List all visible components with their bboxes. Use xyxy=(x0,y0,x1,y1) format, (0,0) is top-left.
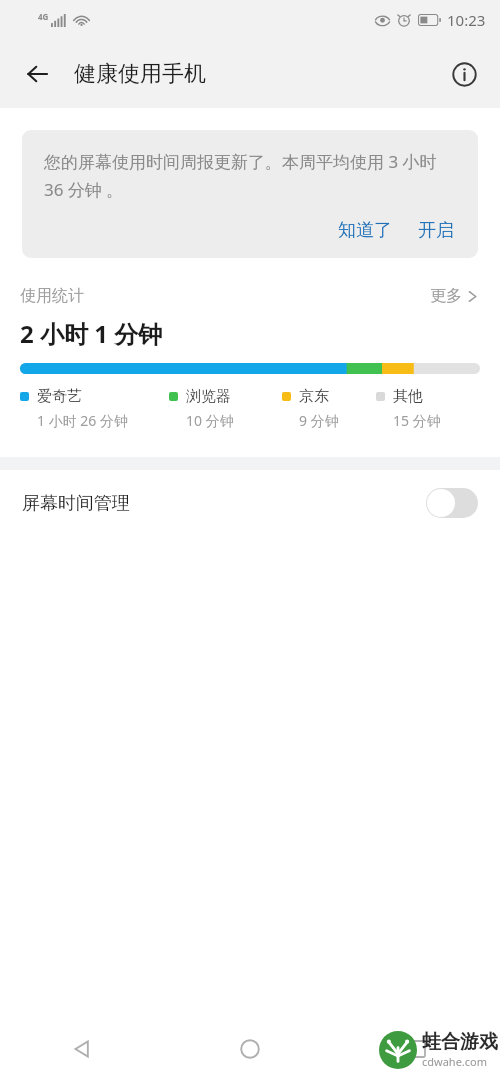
staticText: 您的屏幕使用时间周报更新了。本周平均使用 3 小时 36 分钟 。 xyxy=(44,150,458,201)
staticText: 15 分钟 xyxy=(393,411,441,430)
staticText: 10:23 xyxy=(447,10,486,30)
button[interactable]: 信息 xyxy=(440,50,488,98)
button[interactable]: 知道了 xyxy=(334,217,396,244)
staticText: 开启 xyxy=(418,219,454,242)
button[interactable]: 开启 xyxy=(414,217,458,244)
staticText: 使用统计 xyxy=(20,286,84,306)
staticText: 知道了 xyxy=(338,219,392,242)
button[interactable]: 返回 xyxy=(12,49,62,99)
staticText: 2 小时 1 分钟 xyxy=(20,317,163,350)
button[interactable]: 返回 xyxy=(0,1014,166,1084)
staticText: 1 小时 26 分钟 xyxy=(37,411,128,430)
staticText: 更多 xyxy=(430,286,462,306)
button[interactable]: 更多 xyxy=(427,284,480,308)
staticText: 爱奇艺 xyxy=(37,387,82,406)
staticText: 蛙合游戏 xyxy=(422,1030,498,1054)
button[interactable]: 主屏幕 xyxy=(166,1014,333,1084)
staticText: 其他 xyxy=(393,387,423,406)
staticText: 京东 xyxy=(299,387,329,406)
button[interactable]: 屏幕时间管理 xyxy=(0,470,500,536)
button[interactable]: 最近任务 xyxy=(333,1014,500,1084)
staticText: cdwahe.com xyxy=(422,1054,488,1069)
staticText: 浏览器 xyxy=(186,387,231,406)
staticText: 4G xyxy=(38,11,49,22)
button[interactable]: 您的屏幕使用时间周报更新了。本周平均使用 3 小时 36 分钟 。 xyxy=(22,130,478,258)
staticText: 健康使用手机 xyxy=(74,60,206,88)
button[interactable]: 屏幕时间管理开关 xyxy=(426,488,478,518)
staticText: 9 分钟 xyxy=(299,411,339,430)
staticText: 屏幕时间管理 xyxy=(22,492,130,515)
staticText: 10 分钟 xyxy=(186,411,234,430)
